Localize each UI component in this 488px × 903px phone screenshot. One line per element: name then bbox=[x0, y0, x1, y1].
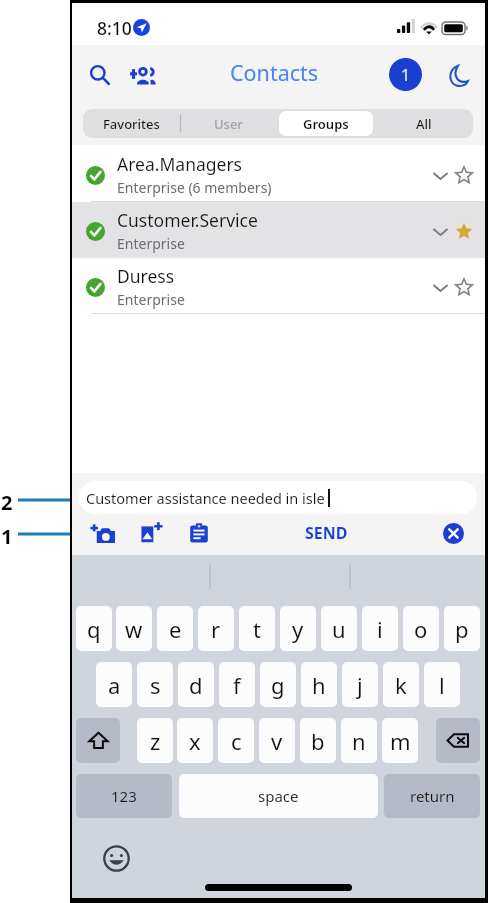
staticText: 1 bbox=[1, 523, 13, 550]
button[interactable]: b bbox=[300, 718, 336, 763]
button[interactable]: u bbox=[321, 606, 357, 651]
staticText: Enterprise bbox=[117, 290, 185, 309]
button[interactable]: w bbox=[116, 606, 152, 651]
button[interactable]: SEND bbox=[300, 521, 352, 545]
button[interactable]: Contacts bbox=[230, 58, 319, 87]
button[interactable]: m bbox=[382, 718, 418, 763]
button[interactable]: Expand bbox=[426, 161, 454, 189]
button[interactable]: a bbox=[96, 662, 132, 707]
staticText: i bbox=[377, 614, 383, 644]
staticText: r bbox=[211, 614, 221, 644]
button[interactable]: Dark mode bbox=[443, 61, 471, 89]
button[interactable]: Add image bbox=[136, 517, 168, 549]
staticText: Enterprise (6 members) bbox=[117, 178, 272, 197]
button[interactable]: f bbox=[219, 662, 255, 707]
button[interactable]: Templates bbox=[183, 517, 215, 549]
staticText: s bbox=[150, 670, 161, 700]
button[interactable]: l bbox=[424, 662, 460, 707]
staticText: a bbox=[108, 670, 121, 700]
button[interactable]: Add contact bbox=[127, 59, 159, 91]
staticText: Enterprise bbox=[117, 234, 185, 253]
button[interactable]: Shift bbox=[76, 718, 120, 763]
button[interactable]: Search bbox=[85, 60, 115, 90]
staticText: All bbox=[416, 115, 432, 133]
staticText: n bbox=[352, 726, 366, 756]
button[interactable]: Clear text bbox=[440, 520, 466, 546]
button[interactable]: return bbox=[384, 774, 480, 818]
button[interactable]: Favorite bbox=[450, 217, 477, 244]
staticText: SEND bbox=[305, 522, 348, 544]
staticText: q bbox=[87, 614, 101, 644]
button[interactable]: Expand bbox=[426, 273, 454, 301]
staticText: p bbox=[455, 614, 469, 644]
button[interactable]: Emoji keyboard bbox=[100, 842, 133, 875]
button[interactable]: Customer.Service bbox=[72, 202, 485, 258]
staticText: Groups bbox=[303, 115, 349, 133]
button[interactable]: i bbox=[362, 606, 398, 651]
button[interactable]: 1 bbox=[389, 58, 422, 91]
button[interactable]: q bbox=[76, 606, 112, 651]
button[interactable]: All bbox=[377, 111, 471, 136]
staticText: c bbox=[231, 726, 242, 756]
staticText: k bbox=[395, 670, 407, 700]
button[interactable]: v bbox=[259, 718, 295, 763]
button[interactable]: space bbox=[179, 774, 378, 818]
button[interactable]: k bbox=[383, 662, 419, 707]
staticText: Duress bbox=[117, 264, 175, 288]
button[interactable]: x bbox=[177, 718, 213, 763]
button[interactable]: Customer assistance needed in isle bbox=[79, 481, 477, 514]
button[interactable]: y bbox=[280, 606, 316, 651]
button[interactable]: Favorites bbox=[85, 111, 178, 136]
staticText: Area.Managers bbox=[117, 152, 243, 176]
button[interactable]: h bbox=[301, 662, 337, 707]
button[interactable]: Backspace bbox=[436, 718, 480, 763]
button[interactable]: Expand bbox=[426, 217, 454, 245]
button[interactable]: Area.Managers bbox=[72, 146, 485, 202]
staticText: t bbox=[253, 614, 261, 644]
button[interactable]: r bbox=[198, 606, 234, 651]
staticText: g bbox=[271, 670, 285, 700]
button[interactable]: Groups bbox=[279, 111, 373, 136]
staticText: f bbox=[233, 670, 241, 700]
staticText: 123 bbox=[111, 786, 137, 806]
button[interactable]: s bbox=[137, 662, 173, 707]
staticText: v bbox=[271, 726, 283, 756]
button[interactable]: Duress bbox=[72, 258, 485, 314]
button[interactable]: t bbox=[239, 606, 275, 651]
staticText: o bbox=[414, 614, 428, 644]
button[interactable]: e bbox=[157, 606, 193, 651]
staticText: return bbox=[410, 786, 455, 806]
button[interactable]: n bbox=[341, 718, 377, 763]
staticText: e bbox=[169, 614, 182, 644]
button[interactable]: j bbox=[342, 662, 378, 707]
button[interactable]: g bbox=[260, 662, 296, 707]
staticText: m bbox=[390, 726, 411, 756]
button[interactable]: o bbox=[403, 606, 439, 651]
staticText: w bbox=[125, 614, 143, 644]
button[interactable]: z bbox=[137, 718, 173, 763]
button[interactable]: 123 bbox=[76, 774, 172, 818]
button[interactable]: c bbox=[218, 718, 254, 763]
staticText: space bbox=[258, 786, 299, 806]
staticText: Customer assistance needed in isle bbox=[86, 488, 325, 508]
button[interactable]: Favorite bbox=[450, 161, 477, 188]
staticText: 1 bbox=[401, 64, 411, 86]
button[interactable]: Add photo from camera bbox=[86, 517, 118, 549]
staticText: l bbox=[439, 670, 445, 700]
staticText: x bbox=[189, 726, 201, 756]
staticText: User bbox=[214, 115, 243, 133]
staticText: h bbox=[312, 670, 326, 700]
staticText: Favorites bbox=[103, 115, 160, 133]
staticText: 2 bbox=[1, 489, 13, 516]
staticText: z bbox=[150, 726, 161, 756]
button[interactable]: User bbox=[182, 111, 275, 136]
staticText: Customer.Service bbox=[117, 208, 258, 232]
button[interactable]: Favorite bbox=[450, 273, 477, 300]
staticText: 8:10 bbox=[97, 16, 132, 40]
staticText: u bbox=[332, 614, 346, 644]
staticText: y bbox=[292, 614, 304, 644]
staticText: j bbox=[357, 670, 363, 700]
button[interactable]: p bbox=[444, 606, 480, 651]
staticText: d bbox=[189, 670, 203, 700]
button[interactable]: d bbox=[178, 662, 214, 707]
